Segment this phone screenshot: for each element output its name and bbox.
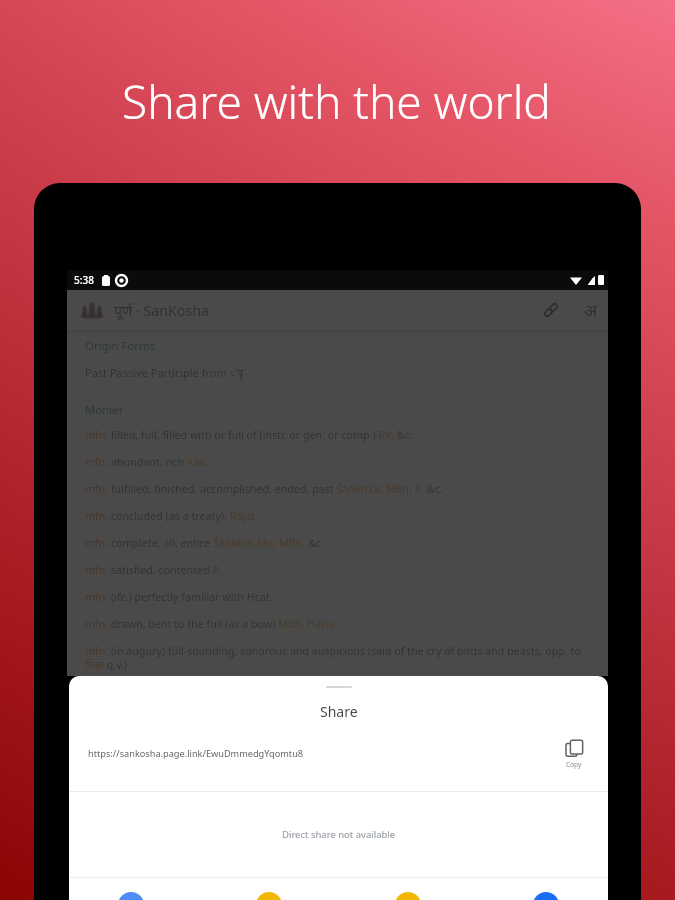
staticText: mfn. abundant, rich Kāv. (85, 455, 208, 470)
staticText: 5:38 (74, 273, 94, 287)
button[interactable]: Text size (575, 295, 605, 325)
staticText: mfn. complete, all, entire Śāṅkhśr. Mn. … (85, 536, 324, 551)
staticText: Copy (566, 760, 582, 769)
staticText: Past Passive Participle from √पृ (85, 365, 243, 380)
staticText: mfn. drawn, bent to the full (as a bow) … (85, 617, 337, 632)
button[interactable]: Share target (221, 878, 317, 900)
staticText: mfn. fulfilled, finished, accomplished, … (85, 482, 443, 497)
staticText: mfn. filled, full, filled with or full o… (85, 428, 413, 443)
button[interactable]: Share target (83, 878, 179, 900)
button[interactable]: mfn. drawn, bent to the full (as a bow) … (85, 617, 590, 644)
button[interactable]: Copy link (556, 738, 592, 771)
button[interactable]: Share target (360, 878, 456, 900)
button[interactable]: mfn. concluded (as a treaty), Rājat. (85, 509, 590, 536)
staticText: mfn. (in augury) full-sounding, sonorous… (85, 644, 590, 671)
staticText: अ (584, 299, 597, 322)
staticText: Origin Forms (85, 338, 156, 354)
staticText: mfn. satisfied, contented R. (85, 563, 222, 578)
button[interactable]: mfn. (in augury) full-sounding, sonorous… (85, 644, 590, 671)
staticText: mfn. concluded (as a treaty), Rājat. (85, 509, 258, 524)
staticText: mfn. (ifc.) perfectly familiar with Hcat… (85, 590, 273, 605)
button[interactable]: mfn. fulfilled, finished, accomplished, … (85, 482, 590, 509)
staticText: Share with the world (122, 70, 551, 133)
button[interactable]: mfn. filled, full, filled with or full o… (85, 428, 590, 455)
staticText: Direct share not available (282, 828, 396, 841)
button[interactable]: mfn. complete, all, entire Śāṅkhśr. Mn. … (85, 536, 590, 563)
button[interactable]: mfn. (ifc.) perfectly familiar with Hcat… (85, 590, 590, 617)
staticText: https://sankosha.page.link/EwuDmmedgYqom… (88, 747, 304, 760)
button[interactable]: Share target (498, 878, 594, 900)
staticText: Monier (85, 402, 124, 418)
button[interactable]: Share link (536, 295, 566, 325)
staticText: पूर्ण · SanKosha (114, 301, 209, 320)
staticText: Share (320, 702, 358, 721)
